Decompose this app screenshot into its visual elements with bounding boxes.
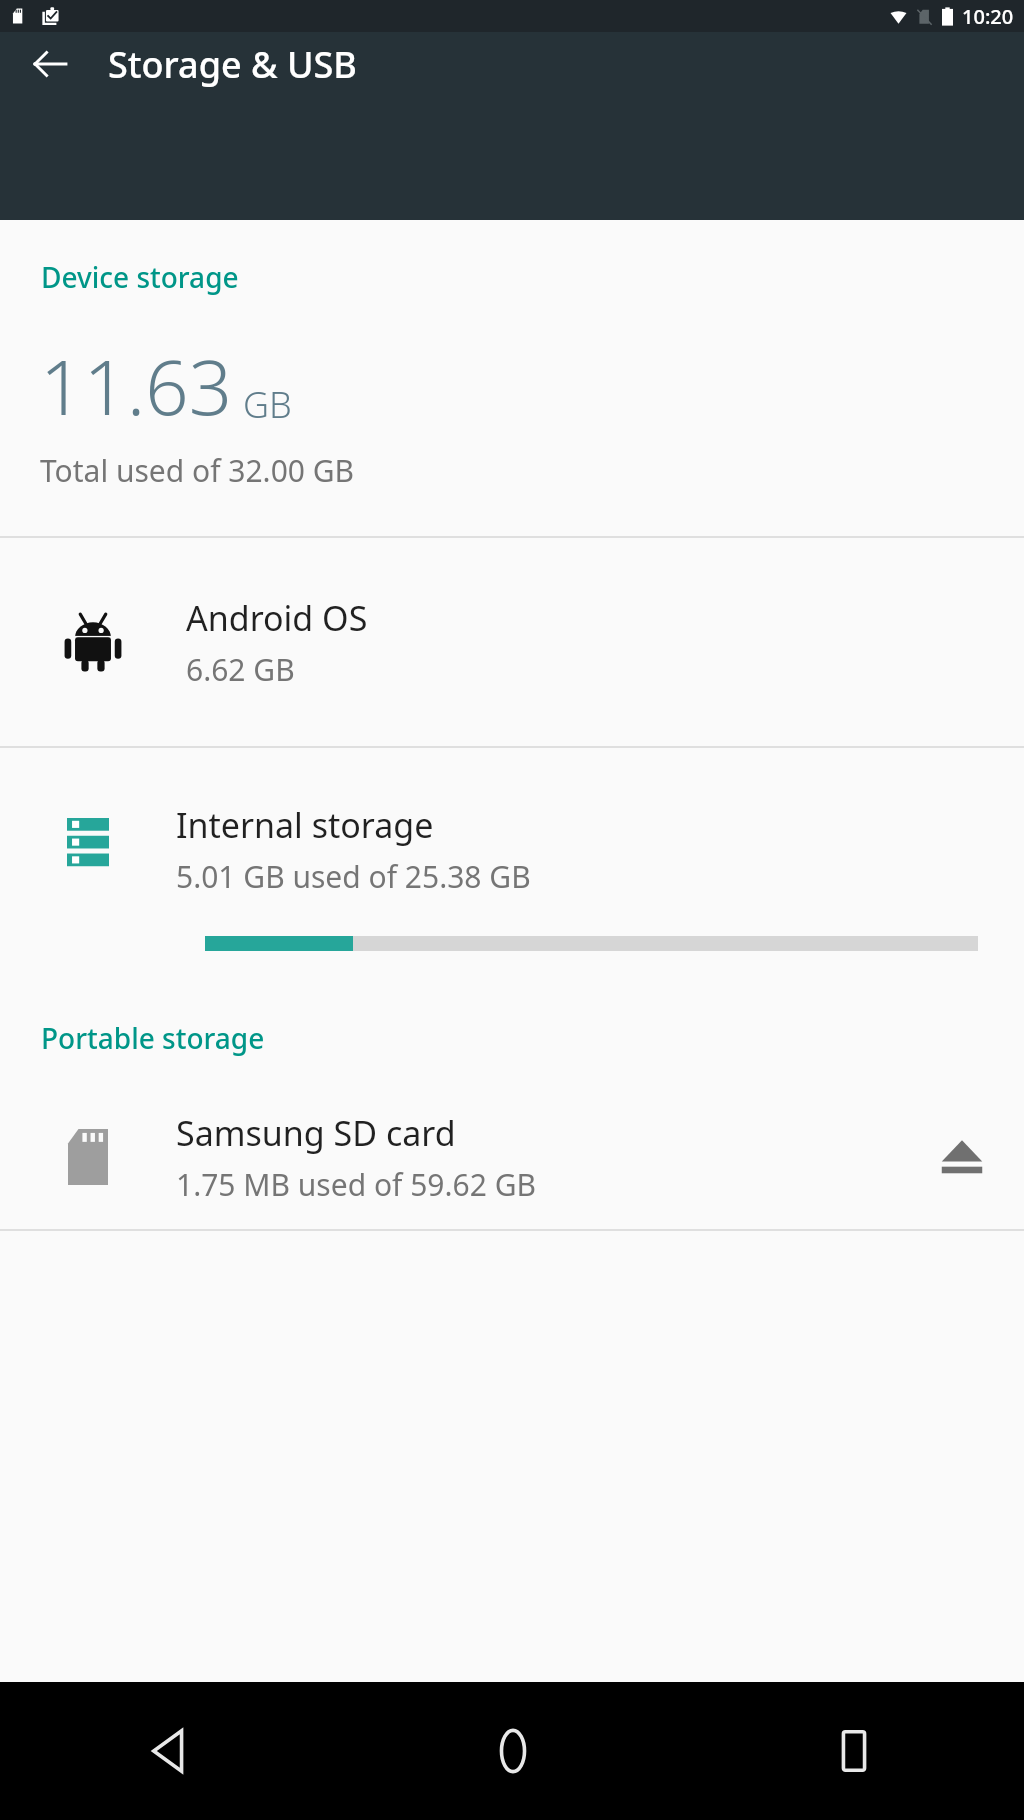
staticText: 10:20 — [962, 3, 1014, 30]
button[interactable]: Internal storage — [0, 748, 1024, 997]
button[interactable]: Recent apps — [683, 1682, 1024, 1820]
button[interactable]: Android OS — [0, 538, 1024, 746]
button[interactable]: Home — [342, 1682, 683, 1820]
button[interactable]: Eject SD card — [899, 1085, 1024, 1229]
button[interactable]: Back — [18, 32, 82, 96]
staticText: 11.63 — [40, 334, 233, 438]
button[interactable]: Back — [0, 1682, 342, 1820]
staticText: 1.75 MB used of 59.62 GB — [176, 1164, 536, 1205]
staticText: GB — [243, 380, 292, 429]
staticText: Device storage — [41, 258, 239, 296]
staticText: 5.01 GB used of 25.38 GB — [176, 856, 531, 897]
staticText: 6.62 GB — [186, 649, 295, 690]
staticText: Internal storage — [176, 802, 434, 848]
button[interactable]: Samsung SD card — [0, 1085, 1024, 1229]
staticText: Android OS — [186, 595, 368, 641]
staticText: Total used of 32.00 GB — [40, 450, 355, 491]
staticText: Portable storage — [41, 1019, 265, 1057]
staticText: Samsung SD card — [176, 1110, 456, 1156]
staticText: Storage & USB — [108, 40, 357, 89]
